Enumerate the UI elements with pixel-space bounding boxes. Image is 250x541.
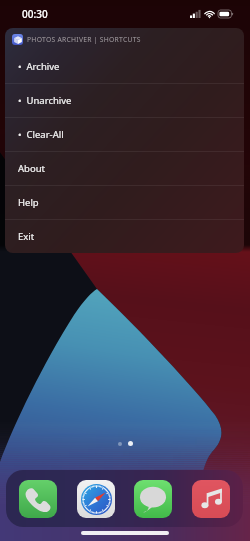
staticText: About (18, 162, 45, 175)
button[interactable]: • Clear-All (5, 118, 244, 151)
staticText: Help (18, 196, 39, 209)
staticText: Exit (18, 230, 35, 243)
button[interactable]: About (5, 152, 244, 185)
button[interactable]: Help (5, 186, 244, 219)
button[interactable]: Messages (134, 480, 172, 518)
staticText: PHOTOS ARCHIVER | SHORTCUTS (27, 35, 141, 44)
button[interactable]: Safari (77, 480, 115, 518)
staticText: • Clear-All (18, 128, 64, 141)
staticText: • Unarchive (18, 94, 72, 107)
button[interactable]: • Unarchive (5, 84, 244, 117)
button[interactable]: Exit (5, 220, 244, 253)
staticText: • Archive (18, 60, 60, 73)
button[interactable]: Phone (19, 480, 57, 518)
button[interactable]: Music (192, 480, 230, 518)
button[interactable]: • Archive (5, 50, 244, 83)
staticText: 00:30 (22, 7, 48, 21)
